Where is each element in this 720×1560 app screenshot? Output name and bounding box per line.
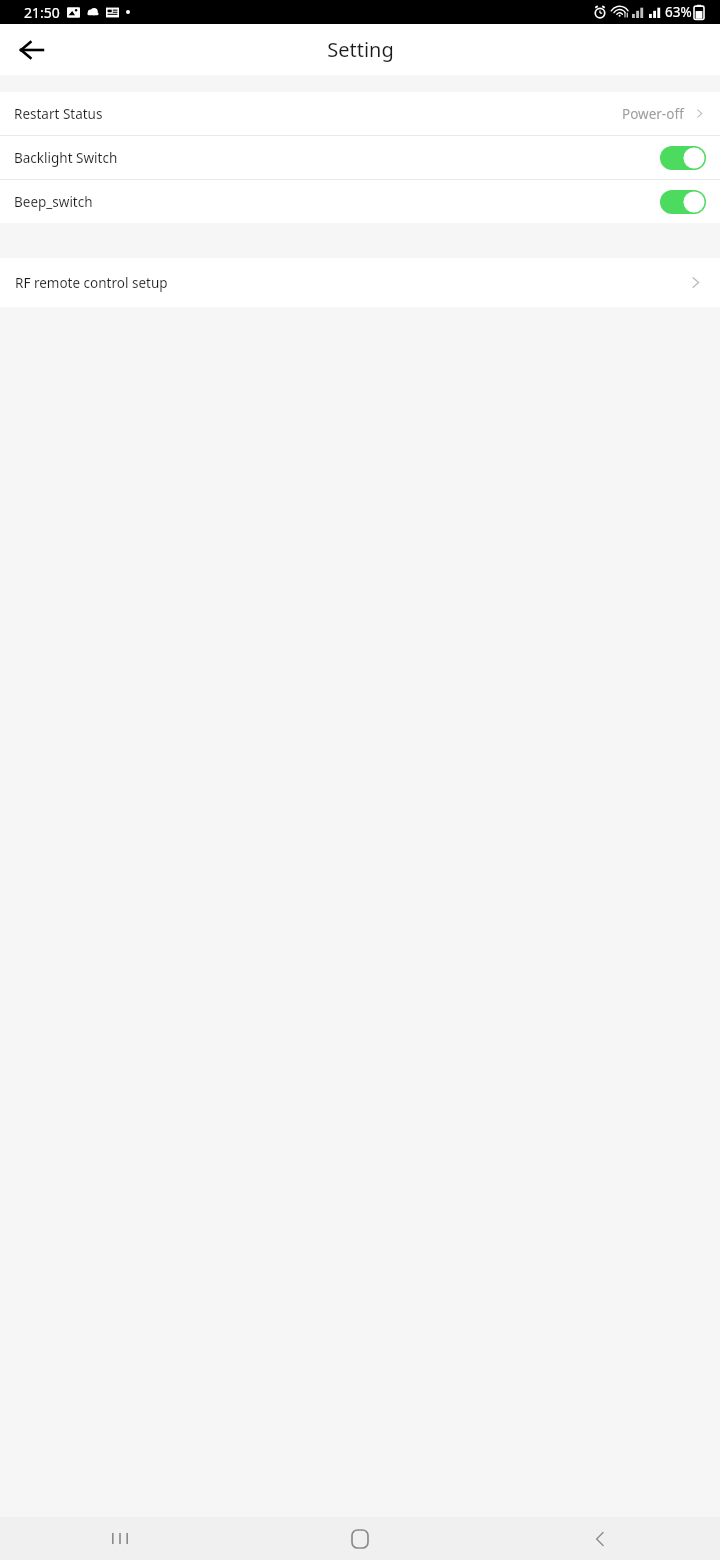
button[interactable]: Restart Status [0,92,720,135]
staticText: 21:50 [24,3,60,22]
button[interactable]: Back [8,26,56,74]
button[interactable]: Beep_switch [0,180,720,223]
button[interactable]: Back [576,1517,624,1560]
button[interactable]: Toggle on [660,190,706,214]
staticText: Beep_switch [14,193,93,211]
staticText: Restart Status [14,105,103,123]
staticText: RF remote control setup [15,274,168,292]
staticText: Setting [327,36,394,63]
button[interactable]: Home [336,1517,384,1560]
staticText: 63% [665,3,692,21]
button[interactable]: Recent apps [96,1517,144,1560]
button[interactable]: Backlight Switch [0,136,720,179]
staticText: Power-off [622,105,684,123]
button[interactable]: Toggle on [660,146,706,170]
button[interactable]: RF remote control setup [0,258,720,307]
staticText: Backlight Switch [14,149,118,167]
